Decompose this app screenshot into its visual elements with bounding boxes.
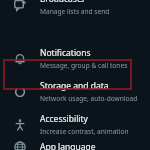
- staticText: Increase contrast, animation: [40, 127, 129, 136]
- staticText: App language: [40, 141, 96, 150]
- button[interactable]: App language: [0, 141, 150, 150]
- button[interactable]: Storage and data: [0, 75, 150, 108]
- staticText: Manage lists and send broadcasts: [40, 7, 144, 16]
- staticText: Network usage, auto-download: [40, 94, 138, 103]
- staticText: Accessibility: [40, 113, 88, 125]
- other: Storage and data: [14, 86, 26, 98]
- button[interactable]: Notifications: [0, 42, 150, 75]
- other: App language: [14, 141, 26, 150]
- staticText: Storage and data: [40, 80, 109, 92]
- button[interactable]: Broadcasts: [0, 0, 150, 21]
- staticText: Notifications: [40, 47, 91, 59]
- other: Broadcasts: [14, 0, 26, 11]
- staticText: Broadcasts: [40, 0, 85, 5]
- other: Notifications: [14, 53, 26, 65]
- staticText: Message, group & call tones: [40, 61, 128, 70]
- button[interactable]: Accessibility: [0, 108, 150, 141]
- other: Accessibility: [14, 119, 26, 131]
